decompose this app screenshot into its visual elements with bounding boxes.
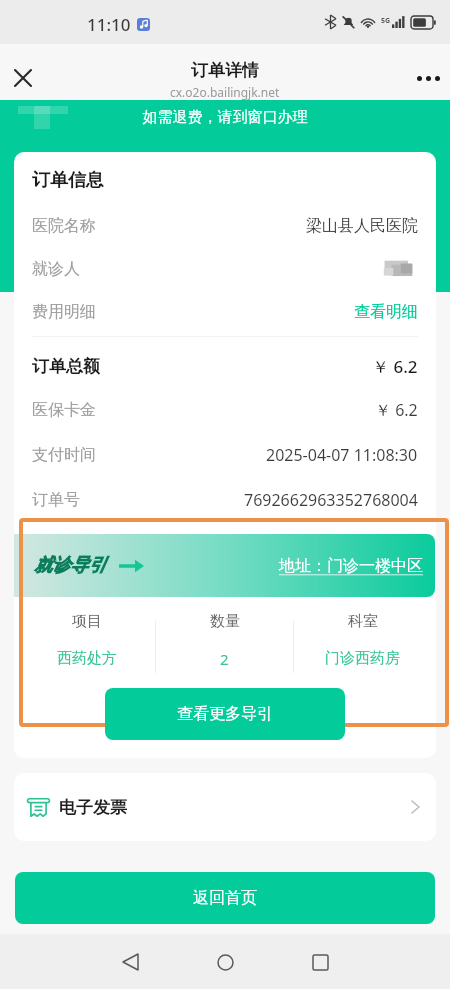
staticText: 数量 xyxy=(210,612,240,631)
staticText: 查看明细 xyxy=(354,302,418,322)
button[interactable]: Recent apps xyxy=(299,941,341,983)
staticText: 就诊导引 xyxy=(34,554,106,577)
staticText: 11:10 xyxy=(87,13,131,36)
staticText: cx.o2o.bailingjk.net xyxy=(170,84,280,100)
staticText: 医院名称 xyxy=(32,216,96,236)
staticText: 门诊西药房 xyxy=(325,649,400,668)
staticText: 订单号 xyxy=(32,490,80,510)
staticText: 西药处方 xyxy=(57,649,117,668)
staticText: 地址：门诊一楼中区 xyxy=(279,556,423,576)
staticText: 支付时间 xyxy=(32,445,96,465)
staticText: 查看更多导引 xyxy=(177,704,273,724)
staticText: 如需退费，请到窗口办理 xyxy=(0,108,450,127)
button[interactable]: 查看更多导引 xyxy=(105,688,345,740)
staticText: 梁山县人民医院 xyxy=(306,216,418,236)
button[interactable]: Home xyxy=(204,941,246,983)
staticText: ￥ 6.2 xyxy=(375,399,418,421)
staticText: 订单总额 xyxy=(32,356,100,377)
staticText: 费用明细 xyxy=(32,302,96,322)
staticText: 订单详情 xyxy=(191,60,259,81)
staticText: ￥ 6.2 xyxy=(372,355,418,378)
staticText: 就诊人 xyxy=(32,259,80,279)
staticText: 7692662963352768004 xyxy=(244,489,418,511)
staticText: 5G xyxy=(381,16,391,26)
button[interactable]: Back xyxy=(109,941,151,983)
staticText: 项目 xyxy=(72,612,102,631)
staticText: 电子发票 xyxy=(59,797,127,818)
staticText: 返回首页 xyxy=(193,888,257,908)
button[interactable]: 返回首页 xyxy=(15,872,435,924)
button[interactable]: 查看明细 xyxy=(354,302,418,322)
staticText: 科室 xyxy=(348,612,378,631)
button[interactable]: 地址：门诊一楼中区 xyxy=(279,556,423,576)
staticText: 2 xyxy=(220,649,229,669)
staticText: 订单信息 xyxy=(32,169,104,192)
button[interactable]: 电子发票 xyxy=(14,773,436,841)
button[interactable]: More options xyxy=(408,58,448,98)
button[interactable]: Close xyxy=(3,58,43,98)
staticText: 医保卡金 xyxy=(32,400,96,420)
staticText: 2025-04-07 11:08:30 xyxy=(266,444,418,466)
